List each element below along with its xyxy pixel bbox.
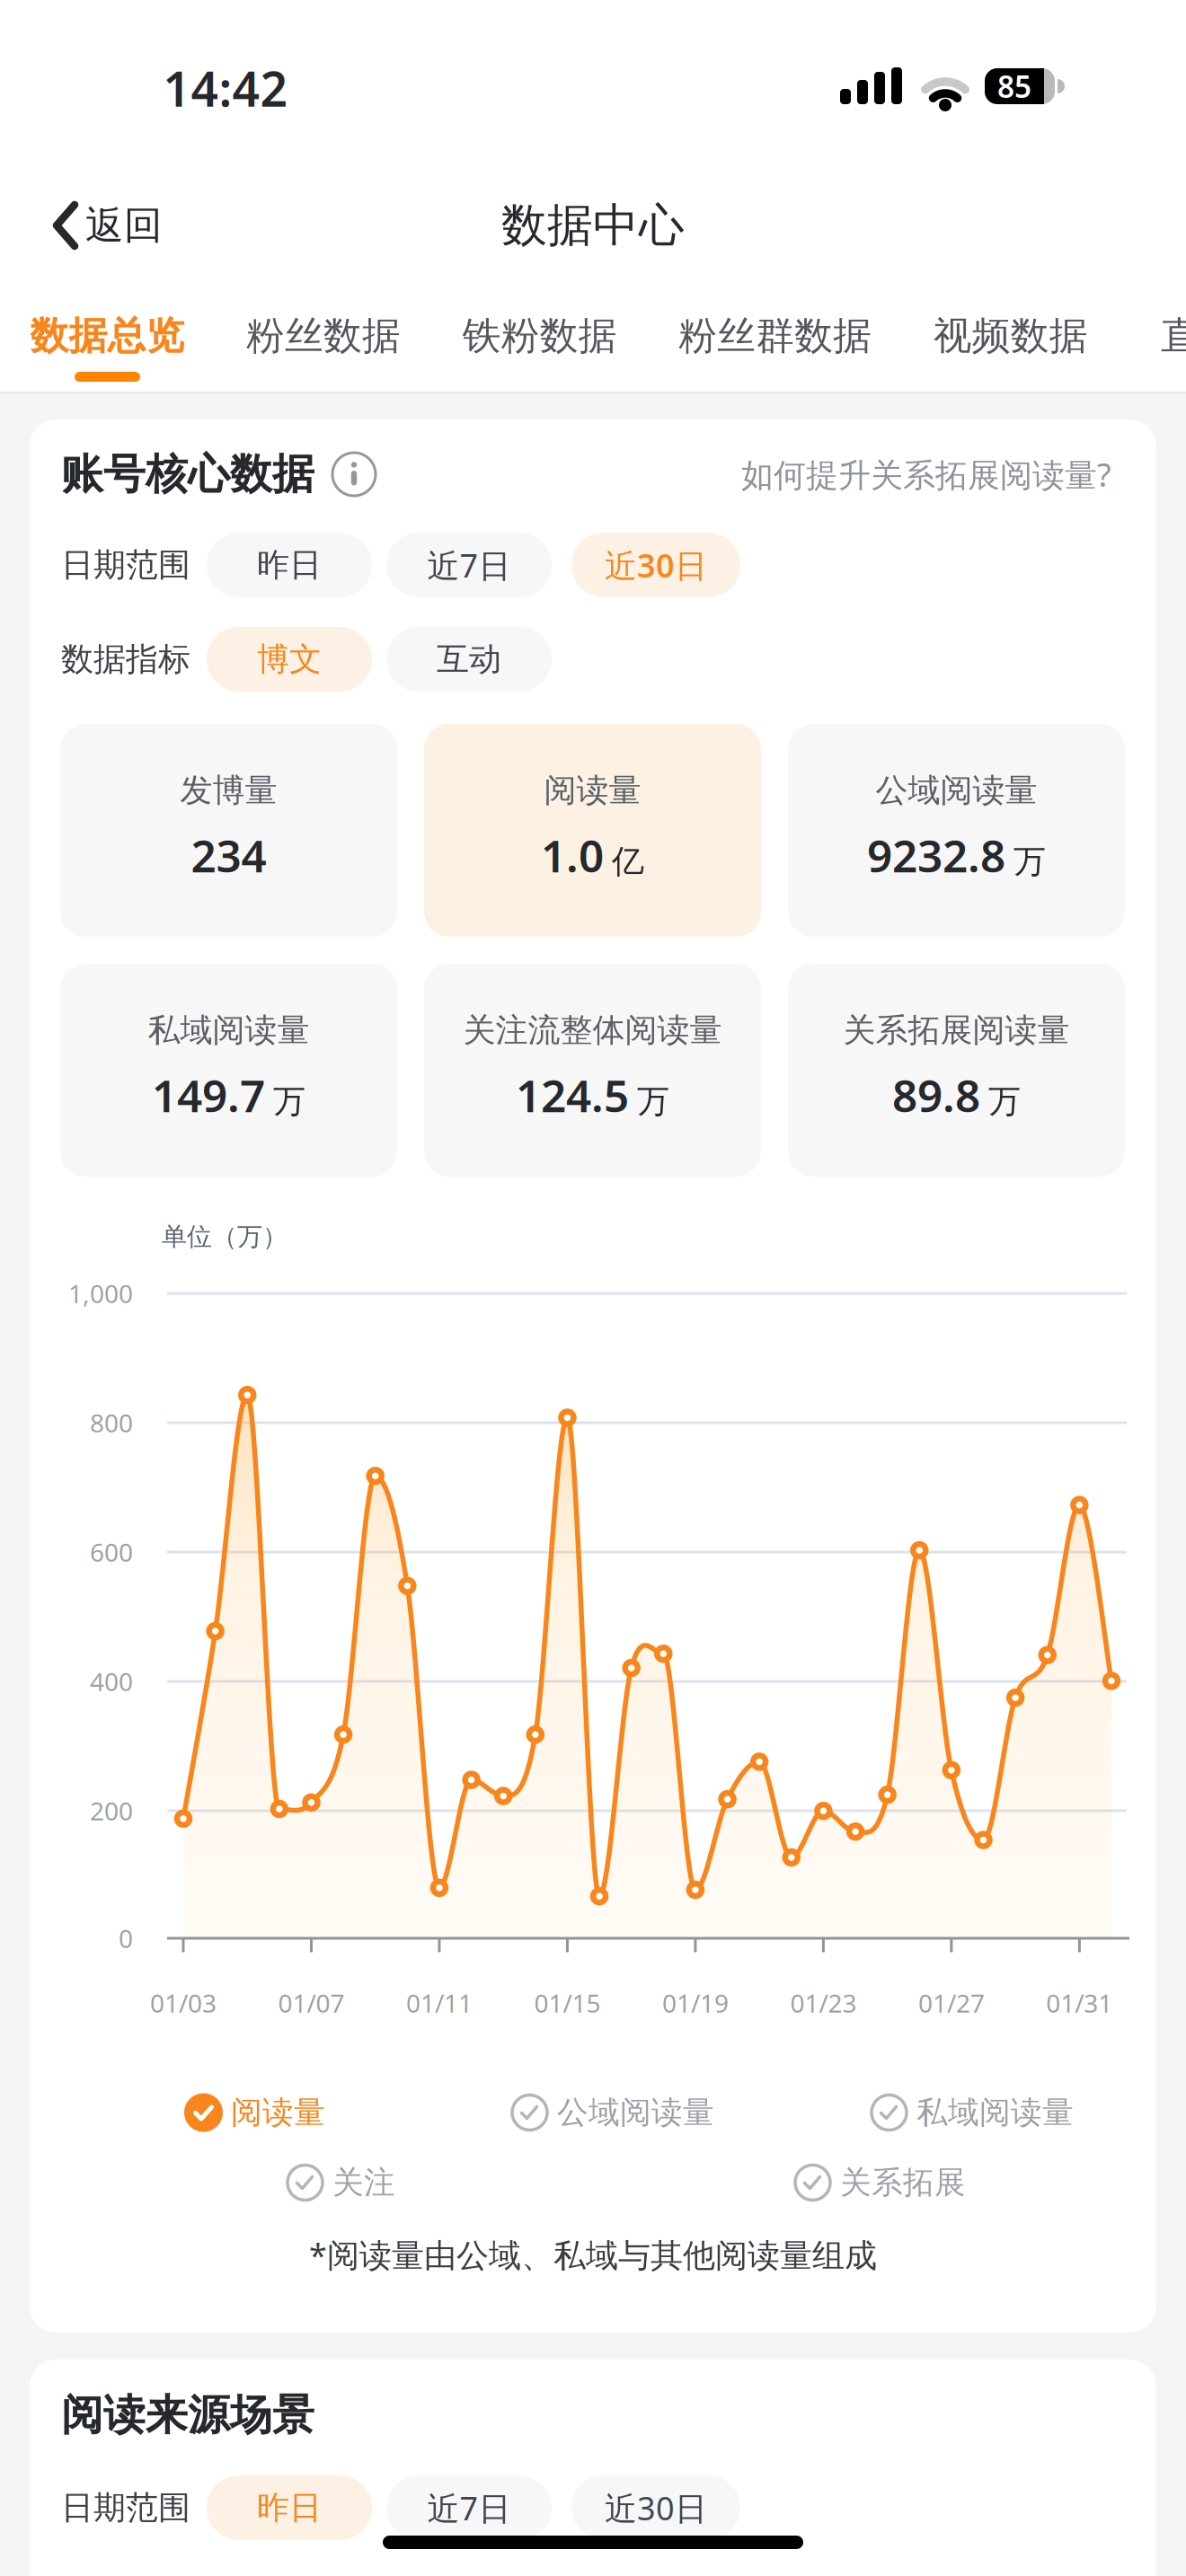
staticText: 返回 xyxy=(85,202,163,249)
staticText: 近7日 xyxy=(427,2486,511,2529)
staticText: 阅读量 xyxy=(231,2093,325,2132)
button[interactable]: 粉丝群数据 xyxy=(679,312,872,359)
staticText: 粉丝数据 xyxy=(246,312,401,359)
staticText: 日期范围 xyxy=(61,2488,190,2528)
button[interactable]: 私域阅读量 xyxy=(60,964,397,1177)
button[interactable]: 如何提升关系拓展阅读量? xyxy=(741,453,1111,496)
staticText: 昨日 xyxy=(257,545,322,585)
staticText: 01/07 xyxy=(278,1986,345,2020)
button[interactable]: 近30日 xyxy=(571,533,740,597)
button[interactable]: 私域阅读量 xyxy=(870,2093,1074,2132)
button[interactable]: 阅读量 xyxy=(184,2093,325,2132)
staticText: 数据中心 xyxy=(501,198,685,253)
button[interactable]: 关系拓展阅读量 xyxy=(788,964,1125,1177)
button[interactable]: 返回 xyxy=(52,200,163,251)
staticText: 日期范围 xyxy=(61,545,190,585)
staticText: 万 xyxy=(988,1081,1021,1121)
staticText: 阅读来源场景 xyxy=(61,2389,314,2441)
button[interactable]: 关系拓展 xyxy=(793,2163,966,2202)
staticText: 01/27 xyxy=(918,1986,985,2020)
staticText: 互动 xyxy=(437,639,501,679)
staticText: 账号核心数据 xyxy=(61,448,314,500)
staticText: 234 xyxy=(191,826,266,884)
staticText: 公域阅读量 xyxy=(876,771,1037,810)
staticText: 万 xyxy=(273,1081,305,1121)
staticText: 私域阅读量 xyxy=(916,2093,1074,2132)
staticText: 近7日 xyxy=(427,543,511,586)
staticText: 01/03 xyxy=(150,1986,217,2020)
staticText: 85 xyxy=(997,66,1031,106)
staticText: 01/31 xyxy=(1046,1986,1113,2020)
staticText: 400 xyxy=(90,1665,133,1698)
staticText: 关注流整体阅读量 xyxy=(463,1010,722,1050)
staticText: 近30日 xyxy=(605,543,707,586)
staticText: 粉丝群数据 xyxy=(679,312,872,359)
staticText: 0 xyxy=(119,1922,133,1955)
button[interactable]: 发博量 xyxy=(60,724,397,937)
staticText: 1,000 xyxy=(68,1277,133,1310)
staticText: 149.7 xyxy=(152,1065,265,1124)
staticText: 公域阅读量 xyxy=(557,2093,714,2132)
staticText: 关注 xyxy=(332,2163,395,2202)
staticText: *阅读量由公域、私域与其他阅读量组成 xyxy=(309,2233,877,2276)
staticText: 铁粉数据 xyxy=(463,312,617,359)
staticText: 89.8 xyxy=(892,1065,980,1124)
staticText: 14:42 xyxy=(163,56,288,120)
button[interactable]: 互动 xyxy=(386,627,552,692)
button[interactable]: 直播数据 xyxy=(1161,312,1186,359)
staticText: 万 xyxy=(637,1081,669,1121)
staticText: 800 xyxy=(90,1406,133,1439)
staticText: 01/11 xyxy=(406,1986,473,2020)
staticText: 直播数据 xyxy=(1161,312,1186,359)
button[interactable]: 博文 xyxy=(207,627,372,692)
button[interactable]: 视频数据 xyxy=(933,312,1088,359)
staticText: 博文 xyxy=(257,639,322,679)
staticText: 600 xyxy=(90,1535,133,1569)
button[interactable]: 近30日 xyxy=(571,2475,740,2540)
button[interactable]: 铁粉数据 xyxy=(463,312,617,359)
staticText: 9232.8 xyxy=(867,826,1005,884)
button[interactable]: 近7日 xyxy=(386,2475,552,2540)
staticText: 01/19 xyxy=(662,1986,729,2020)
button[interactable]: 数据总览 xyxy=(30,312,185,359)
button[interactable]: 近7日 xyxy=(386,533,552,597)
staticText: 如何提升关系拓展阅读量? xyxy=(741,453,1111,496)
staticText: 视频数据 xyxy=(933,312,1088,359)
staticText: 亿 xyxy=(612,842,644,881)
staticText: 数据指标 xyxy=(61,639,190,679)
staticText: 近30日 xyxy=(605,2486,707,2529)
button[interactable]: 粉丝数据 xyxy=(246,312,401,359)
staticText: 阅读量 xyxy=(544,771,641,810)
button[interactable]: 阅读量 xyxy=(424,724,761,937)
staticText: 124.5 xyxy=(516,1065,629,1124)
staticText: 01/23 xyxy=(790,1986,857,2020)
staticText: 昨日 xyxy=(257,2488,322,2528)
staticText: 200 xyxy=(90,1794,133,1827)
staticText: 关系拓展 xyxy=(840,2163,966,2202)
button[interactable]: 关注流整体阅读量 xyxy=(424,964,761,1177)
button[interactable]: 公域阅读量 xyxy=(510,2093,714,2132)
staticText: 关系拓展阅读量 xyxy=(843,1010,1070,1050)
staticText: 1.0 xyxy=(541,826,604,884)
staticText: 01/15 xyxy=(534,1986,601,2020)
staticText: 数据总览 xyxy=(30,312,185,359)
button[interactable]: 关注 xyxy=(286,2163,395,2202)
staticText: 发博量 xyxy=(180,771,277,810)
button[interactable]: 昨日 xyxy=(207,533,372,597)
button[interactable]: 昨日 xyxy=(207,2475,372,2540)
staticText: 万 xyxy=(1013,842,1046,881)
button[interactable]: 公域阅读量 xyxy=(788,724,1125,937)
button[interactable]: 说明 xyxy=(332,453,376,496)
staticText: 单位（万） xyxy=(162,1221,288,1252)
staticText: 私域阅读量 xyxy=(148,1010,310,1050)
